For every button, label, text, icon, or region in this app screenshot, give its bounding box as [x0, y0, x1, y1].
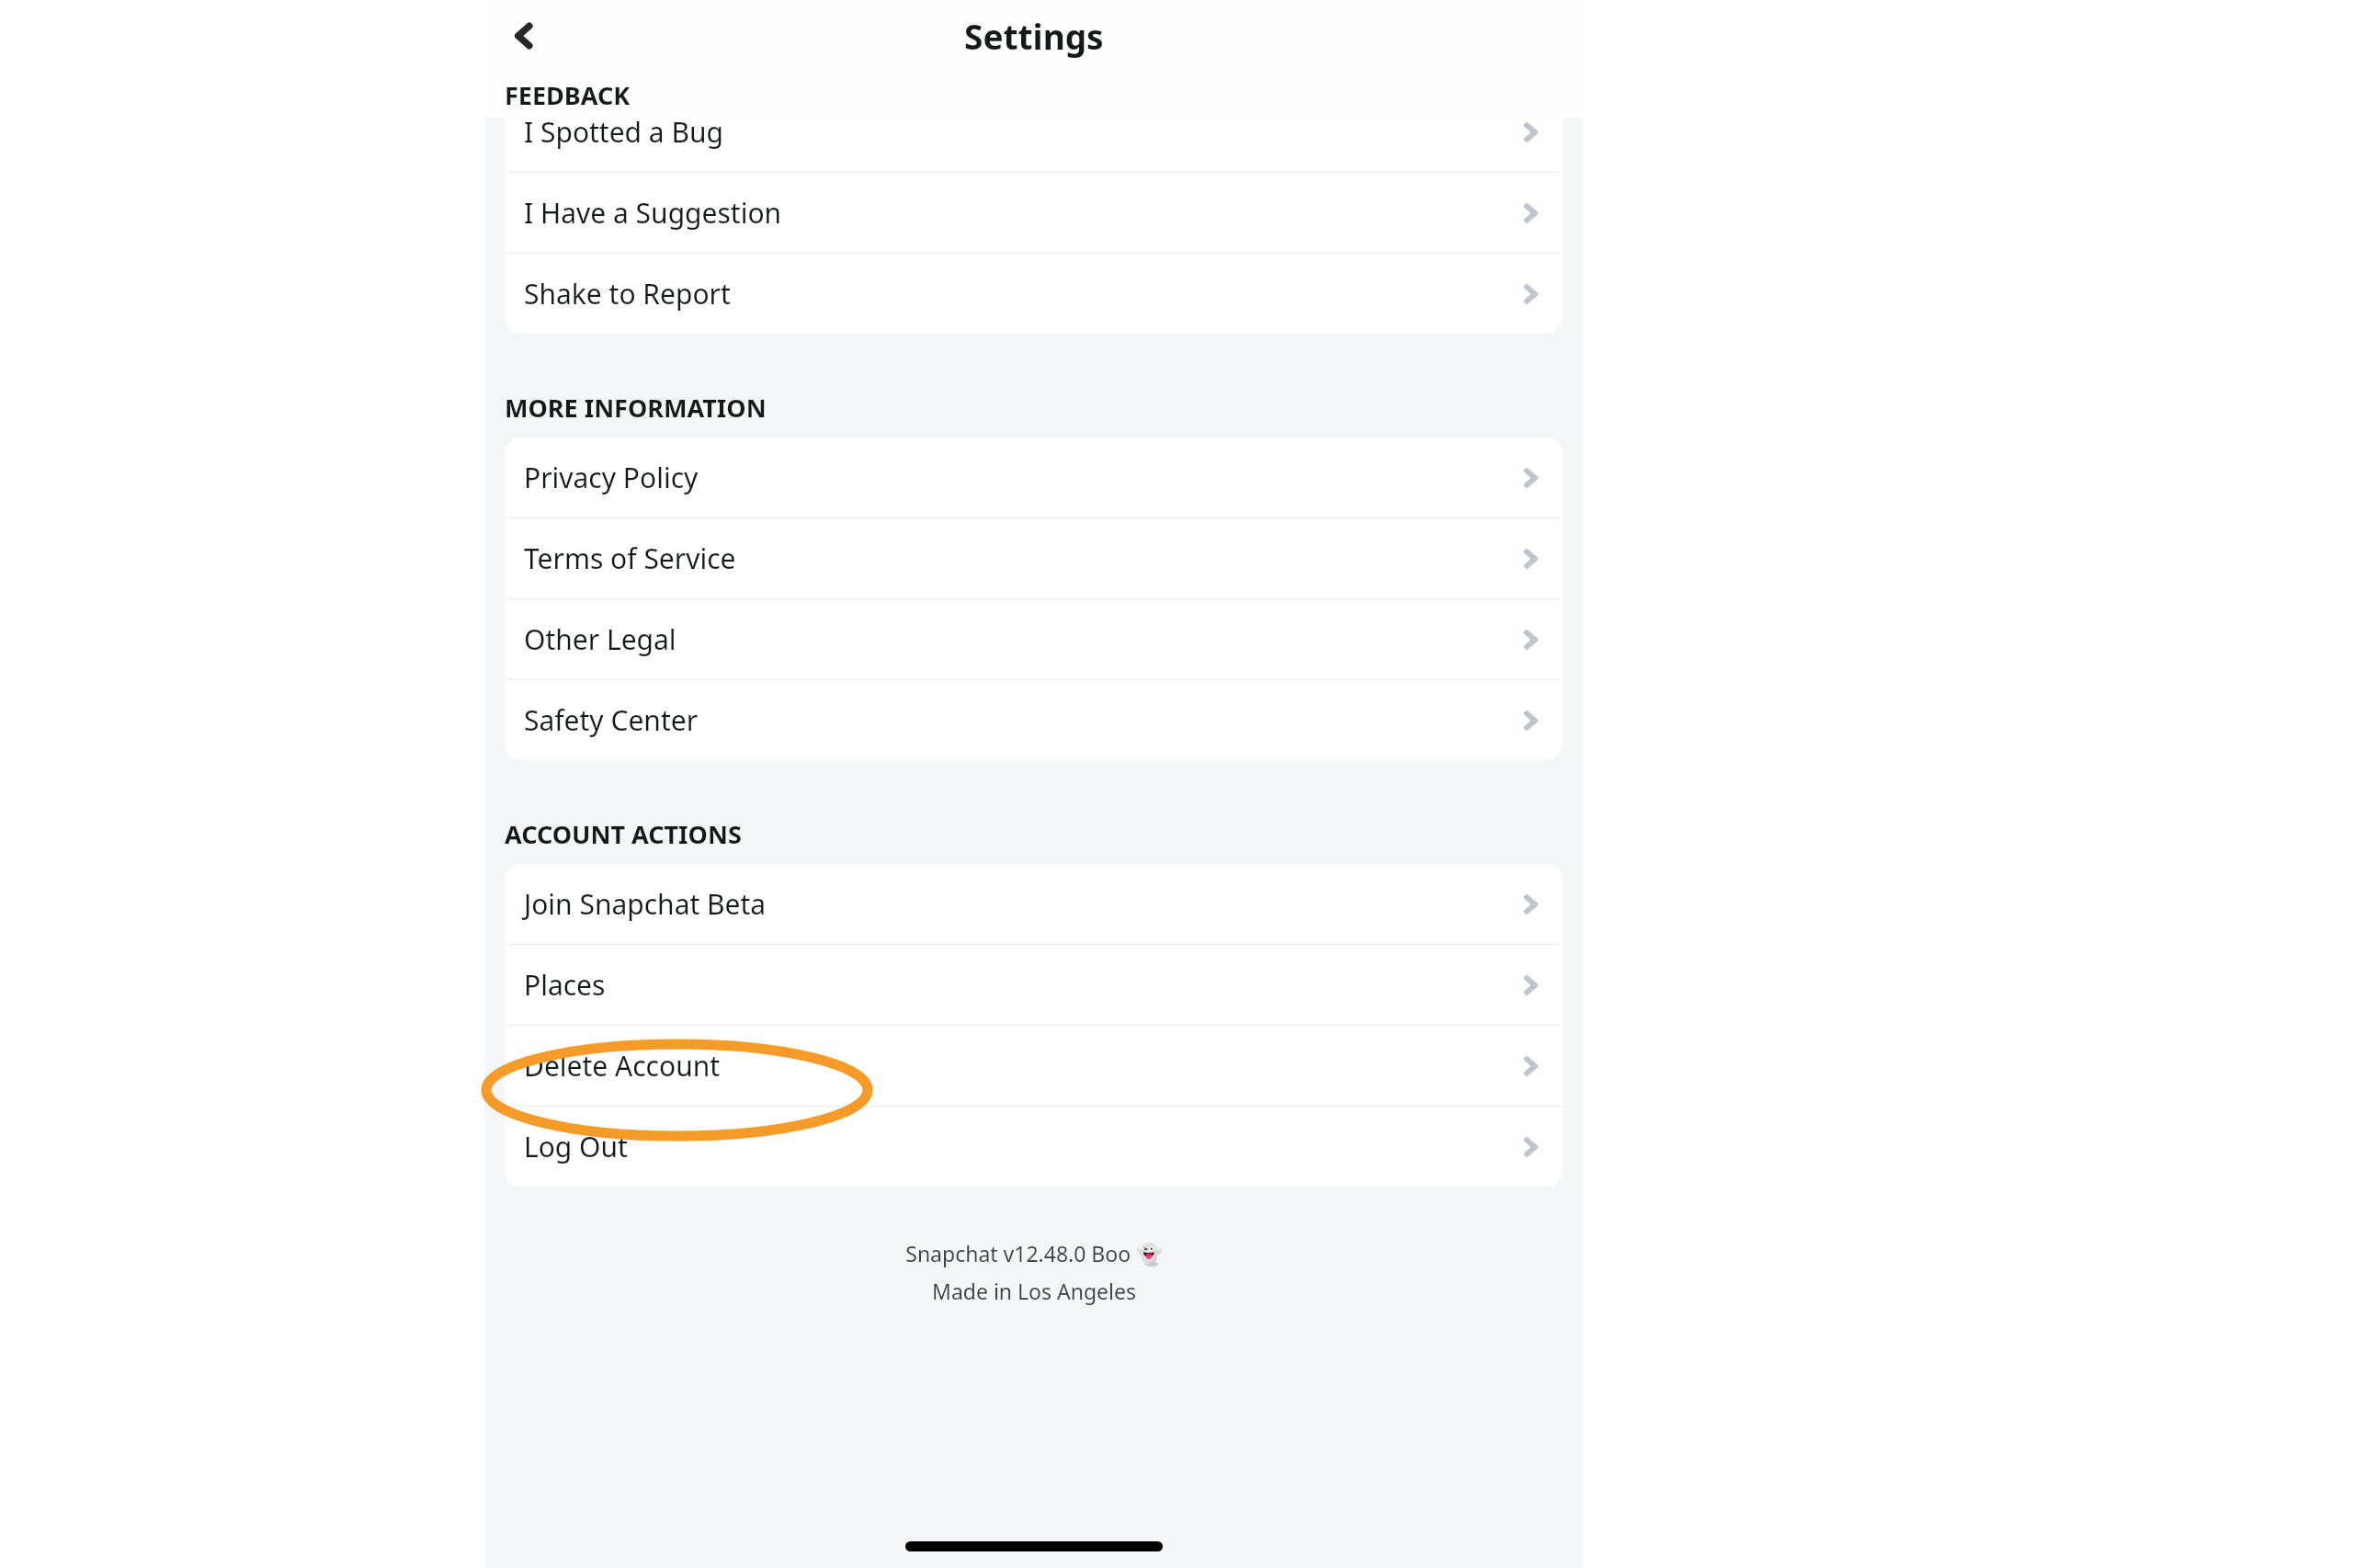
- staticText: Delete Account: [524, 1047, 721, 1085]
- button[interactable]: Log Out: [505, 1107, 1563, 1187]
- button[interactable]: Join Snapchat Beta: [505, 864, 1563, 944]
- button[interactable]: Delete Account: [505, 1026, 1563, 1106]
- staticText: Log Out: [524, 1128, 628, 1165]
- staticText: Settings: [964, 13, 1104, 59]
- button[interactable]: Terms of Service: [505, 518, 1563, 598]
- staticText: MORE INFORMATION: [505, 391, 767, 425]
- staticText: Places: [524, 966, 606, 1004]
- staticText: Snapchat v12.48.0 Boo 👻: [905, 1239, 1163, 1267]
- staticText: Safety Center: [524, 701, 699, 739]
- staticText: ACCOUNT ACTIONS: [505, 817, 742, 851]
- staticText: I Spotted a Bug: [524, 113, 723, 151]
- button[interactable]: Back: [495, 6, 554, 65]
- button[interactable]: Privacy Policy: [505, 437, 1563, 517]
- staticText: Made in Los Angeles: [932, 1277, 1136, 1305]
- staticText: FEEDBACK: [505, 78, 631, 112]
- staticText: Other Legal: [524, 620, 676, 658]
- button[interactable]: Shake to Report: [505, 254, 1563, 334]
- staticText: Shake to Report: [524, 275, 731, 312]
- button[interactable]: I Have a Suggestion: [505, 173, 1563, 253]
- staticText: I Have a Suggestion: [524, 194, 782, 232]
- staticText: Join Snapchat Beta: [524, 885, 767, 923]
- staticText: Terms of Service: [524, 540, 736, 577]
- staticText: Privacy Policy: [524, 459, 699, 496]
- button[interactable]: I Spotted a Bug: [505, 92, 1563, 172]
- button[interactable]: Safety Center: [505, 680, 1563, 760]
- button[interactable]: Places: [505, 945, 1563, 1025]
- button[interactable]: Other Legal: [505, 599, 1563, 679]
